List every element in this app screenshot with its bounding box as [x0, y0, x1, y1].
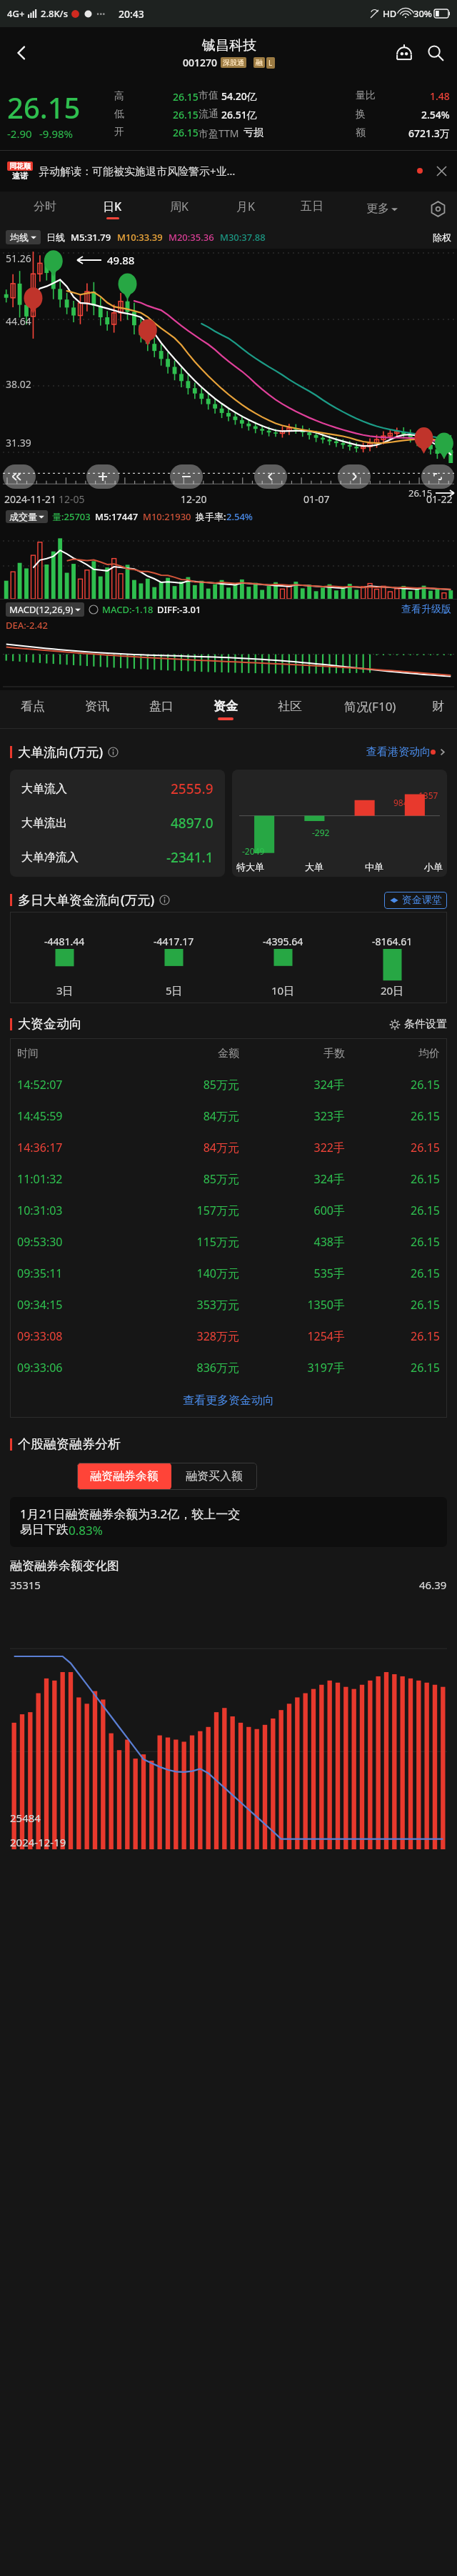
staticText: 更多 [366, 202, 389, 216]
button[interactable]: 10:31:03 [10, 1195, 447, 1226]
button[interactable]: 大单流入 [10, 770, 225, 877]
button[interactable]: 14:52:07 [10, 1069, 447, 1100]
button[interactable]: 条件设置 [389, 1018, 447, 1031]
staticText: 融资融券余额变化图 [10, 1558, 119, 1573]
staticText: 大单流出 [21, 816, 67, 830]
staticText: 大单流入 [21, 782, 67, 796]
staticText: 26.51亿 [221, 108, 257, 121]
staticText: 10:31:03 [17, 1203, 134, 1218]
staticText: 115万元 [134, 1234, 239, 1250]
button[interactable]: 均线 [6, 230, 41, 244]
staticText: 市值 [199, 89, 219, 102]
staticText: 836万元 [134, 1360, 239, 1376]
button[interactable]: 分时 [11, 192, 79, 226]
button[interactable]: 财 [418, 690, 457, 729]
button[interactable]: -4481.44 [10, 912, 447, 1003]
staticText: 分时 [34, 199, 56, 214]
staticText: -2341.1 [166, 848, 214, 867]
button[interactable]: Fullscreen [421, 464, 454, 489]
staticText: M10:21930 [143, 510, 191, 523]
staticText: 26.15 [345, 1108, 440, 1124]
staticText: 26.15 [345, 1234, 440, 1250]
staticText: 大单流向(万元) [18, 743, 104, 761]
staticText: 12-05 [59, 492, 85, 506]
staticText: 盘口 [149, 699, 174, 714]
staticText: 600手 [239, 1203, 345, 1218]
staticText: 开 [114, 126, 124, 139]
staticText: 4897.0 [171, 814, 214, 832]
button[interactable]: 资讯 [65, 690, 129, 729]
button[interactable]: 融资买入额 [171, 1463, 257, 1490]
staticText: 资金课堂 [402, 894, 442, 907]
button[interactable]: 查看更多资金动向 [10, 1383, 447, 1418]
button[interactable]: 09:33:08 [10, 1321, 447, 1352]
button[interactable]: Close [433, 162, 450, 179]
staticText: 均价 [345, 1047, 440, 1060]
staticText: 个股融资融券分析 [18, 1436, 121, 1453]
staticText: 查看港资动向 [366, 745, 431, 759]
button[interactable]: Scroll left [254, 464, 287, 489]
staticText: DEA:-2.42 [6, 619, 48, 632]
staticText: 2024-12-19 [10, 1835, 66, 1849]
button[interactable]: Previous page [3, 464, 36, 489]
staticText: 大单 [305, 861, 323, 872]
staticText: 财 [432, 699, 444, 714]
button[interactable]: 融资融券余额 [77, 1463, 171, 1490]
staticText: 高 [114, 90, 124, 103]
button[interactable]: Zoom out [170, 464, 203, 489]
button[interactable]: 更多 [345, 192, 418, 226]
staticText: 查看更多资金动向 [183, 1393, 274, 1408]
button[interactable]: 周K [146, 192, 212, 226]
staticText: 323手 [239, 1108, 345, 1124]
button[interactable]: Search [420, 37, 451, 69]
button[interactable]: 同花顺 [7, 150, 450, 192]
button[interactable]: 成交量 [6, 510, 48, 523]
staticText: 换 [356, 108, 366, 121]
button[interactable]: MACD(12,26,9) [6, 602, 84, 617]
button[interactable]: Scroll right [338, 464, 371, 489]
button[interactable]: 11:01:32 [10, 1163, 447, 1195]
staticText: 31.39 [6, 436, 31, 449]
button[interactable]: Back [4, 36, 39, 70]
staticText: 14:45:59 [17, 1108, 134, 1124]
button[interactable]: 社区 [258, 690, 322, 729]
button[interactable]: 09:33:06 [10, 1352, 447, 1383]
button[interactable]: 09:34:15 [10, 1289, 447, 1321]
button[interactable]: 09:53:30 [10, 1226, 447, 1258]
button[interactable]: 09:35:11 [10, 1258, 447, 1289]
staticText: MACD:-1.18 [102, 603, 154, 616]
button[interactable]: 14:45:59 [10, 1100, 447, 1132]
staticText: 26.15 [345, 1297, 440, 1313]
button[interactable]: AI assistant [388, 37, 420, 69]
button[interactable]: -2049 [232, 770, 447, 877]
button[interactable]: 14:36:17 [10, 1132, 447, 1163]
staticText: HD [383, 7, 397, 20]
staticText: -2.90 [7, 126, 32, 141]
button[interactable]: 查看港资动向 [366, 745, 447, 759]
staticText: 26.15 [345, 1328, 440, 1344]
staticText: -292 [312, 827, 330, 838]
button[interactable]: 日K [79, 192, 146, 226]
staticText: 35315 [10, 1578, 41, 1592]
button[interactable]: Zoom in [86, 464, 119, 489]
staticText: 融资融券余额 [90, 1469, 159, 1483]
staticText: 2.8K/s [41, 7, 68, 20]
staticText: 额 [356, 126, 366, 139]
staticText: 84万元 [134, 1108, 239, 1124]
staticText: 26.15 [408, 487, 433, 499]
staticText: 金额 [134, 1047, 239, 1060]
button[interactable]: 简况(F10) [322, 690, 418, 729]
staticText: 85万元 [134, 1171, 239, 1187]
button[interactable]: 五日 [278, 192, 345, 226]
button[interactable]: 查看升级版 [401, 603, 451, 616]
staticText: M10:33.39 [117, 231, 163, 244]
button[interactable]: Chart settings [418, 192, 457, 226]
button[interactable]: 看点 [0, 690, 65, 729]
button[interactable]: 资金 [194, 690, 258, 729]
button[interactable]: 月K [212, 192, 278, 226]
staticText: 11:01:32 [17, 1171, 134, 1187]
button[interactable]: 资金课堂 [384, 892, 447, 909]
staticText: 融 [256, 58, 263, 67]
button[interactable]: 除权 [433, 232, 451, 243]
button[interactable]: 盘口 [129, 690, 194, 729]
